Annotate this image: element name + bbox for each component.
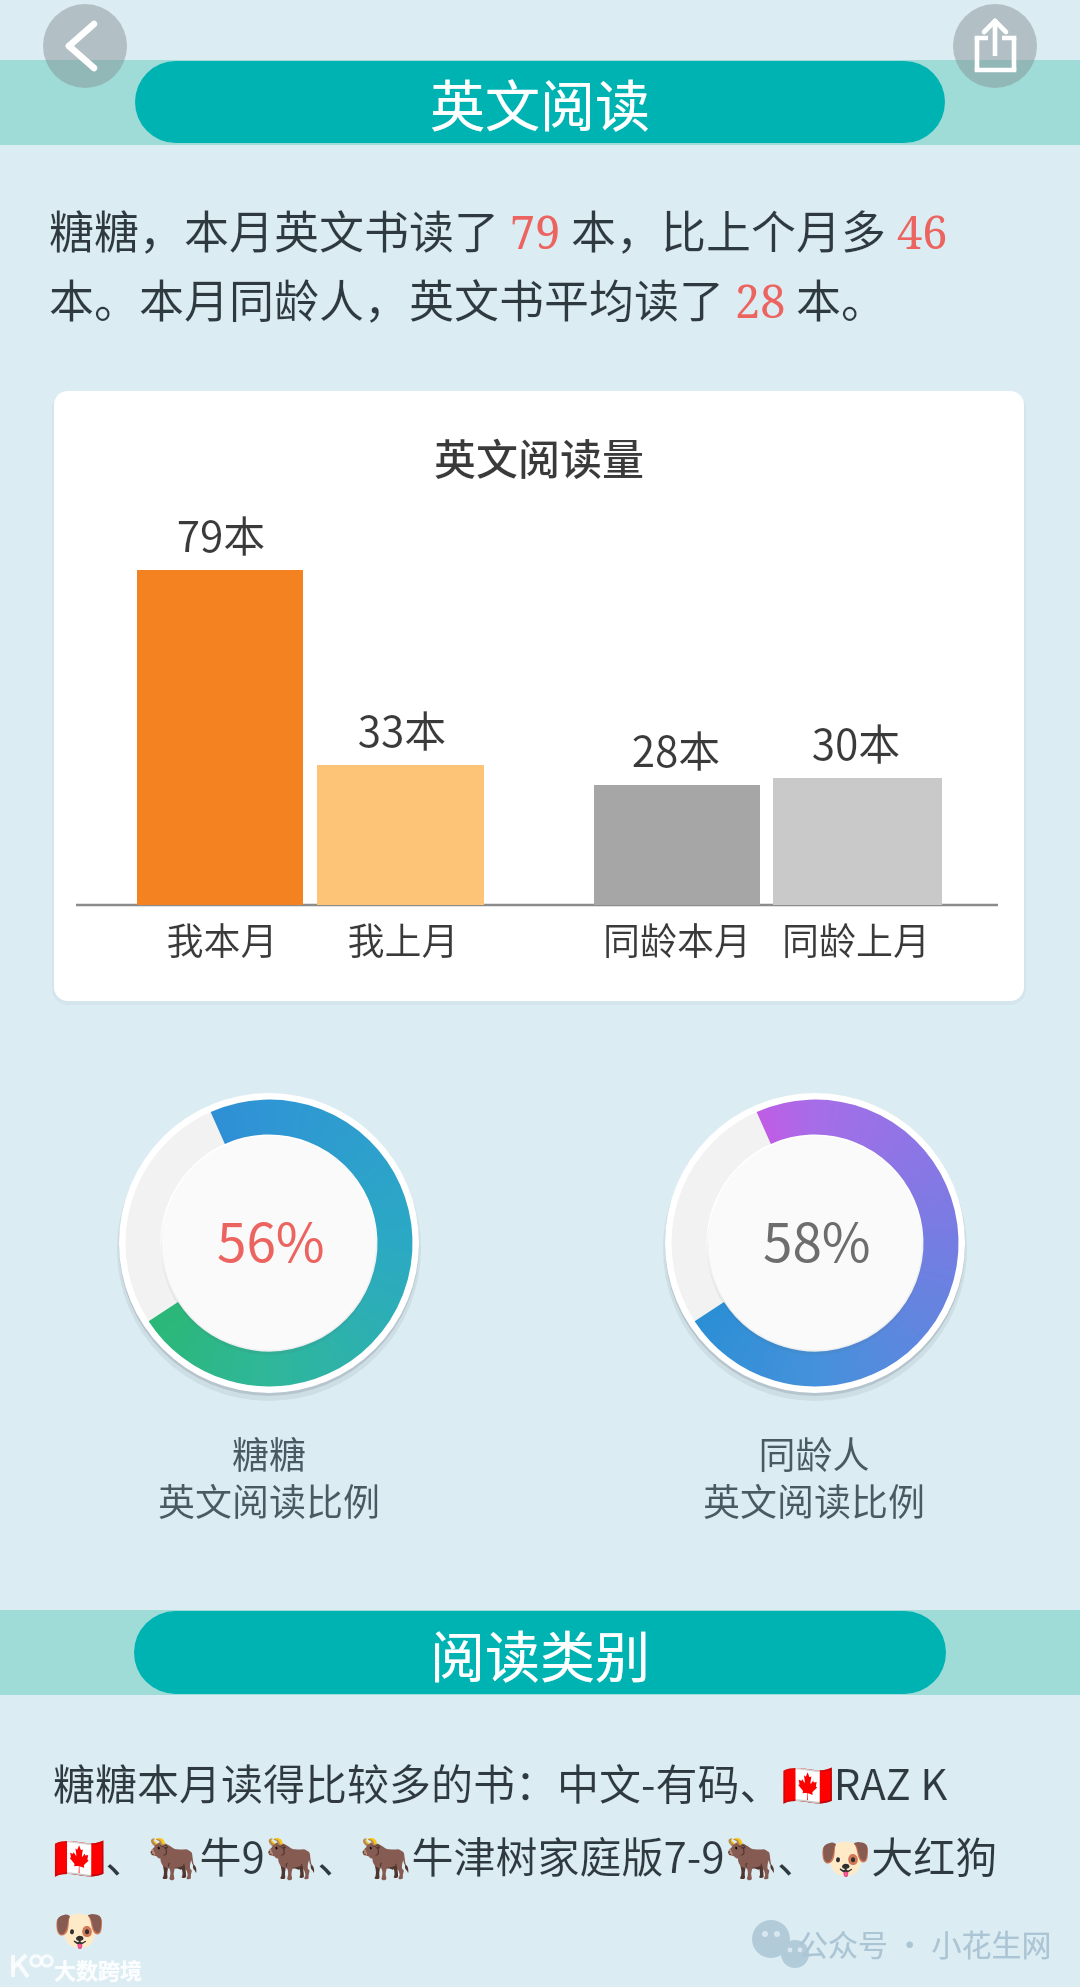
- staticText: 46: [897, 201, 948, 262]
- button[interactable]: Share: [953, 4, 1037, 88]
- staticText: 英文阅读: [430, 62, 651, 142]
- staticText: 公众号 · 小花生网: [798, 1921, 1052, 1964]
- staticText: 同龄上月: [746, 912, 966, 966]
- staticText: 79: [510, 201, 561, 262]
- staticText: 同龄人 英文阅读比例: [614, 1426, 1014, 1527]
- staticText: 33本: [292, 698, 512, 759]
- staticText: 我本月: [112, 912, 332, 966]
- staticText: 本，比上个月多: [561, 197, 897, 262]
- button[interactable]: 英文阅读: [135, 61, 945, 143]
- staticText: 同龄本月: [567, 912, 787, 966]
- staticText: 糖糖 英文阅读比例: [69, 1426, 469, 1527]
- staticText: 28本: [566, 718, 786, 779]
- staticText: 28: [735, 270, 786, 331]
- button[interactable]: Back: [43, 4, 127, 88]
- staticText: 58%: [763, 1201, 871, 1278]
- staticText: 糖糖，本月英文书读了: [49, 197, 510, 262]
- staticText: 30本: [746, 711, 966, 772]
- staticText: 糖糖本月读得比较多的书：中文-有码、🇨🇦RAZ K 🇨🇦、🐂牛9🐂、🐂牛津树家庭…: [53, 1751, 1068, 1955]
- staticText: 阅读类别: [430, 1613, 651, 1693]
- staticText: 本。: [786, 266, 887, 331]
- staticText: 英文阅读量: [434, 426, 645, 487]
- staticText: 大数跨境: [54, 1953, 143, 1985]
- staticText: 本。本月同龄人，英文书平均读了: [49, 266, 735, 331]
- staticText: 79本: [111, 503, 331, 564]
- staticText: 我上月: [293, 912, 513, 966]
- button[interactable]: 阅读类别: [134, 1611, 946, 1694]
- staticText: 56%: [217, 1201, 325, 1278]
